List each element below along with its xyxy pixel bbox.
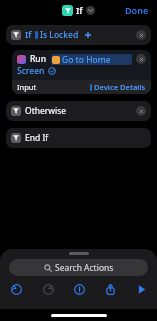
button[interactable]: If [6, 25, 151, 45]
button[interactable]: Run shortcut [126, 281, 157, 297]
staticText: Done [125, 4, 149, 16]
button[interactable]: Input [12, 80, 151, 94]
button[interactable]: Redo [32, 281, 64, 297]
staticText: If [76, 4, 83, 16]
button[interactable]: Remove action [136, 106, 146, 116]
staticText: Search Actions [55, 262, 114, 274]
button[interactable]: Shortcut options [86, 6, 95, 15]
button[interactable]: Otherwise [6, 101, 151, 121]
staticText: End If [25, 132, 49, 144]
staticText: Go to Home [62, 54, 111, 65]
button[interactable]: Undo [0, 281, 32, 297]
staticText: Is Locked [40, 29, 79, 41]
button[interactable]: End If [6, 128, 151, 148]
button[interactable]: Remove action [136, 54, 146, 64]
button[interactable]: Add condition [84, 31, 92, 39]
staticText: If [25, 29, 32, 41]
button[interactable]: Run [12, 50, 151, 80]
button[interactable]: Share [95, 281, 126, 297]
staticText: Run [30, 53, 47, 65]
button[interactable]: Remove action [136, 30, 146, 40]
button[interactable]: Done [122, 2, 152, 18]
staticText: Device Details [94, 82, 146, 92]
staticText: Input [17, 82, 37, 92]
staticText: Otherwise [25, 105, 67, 117]
staticText: Screen [17, 65, 45, 77]
button[interactable]: Search Actions [9, 259, 148, 276]
button[interactable]: Details [64, 281, 95, 297]
